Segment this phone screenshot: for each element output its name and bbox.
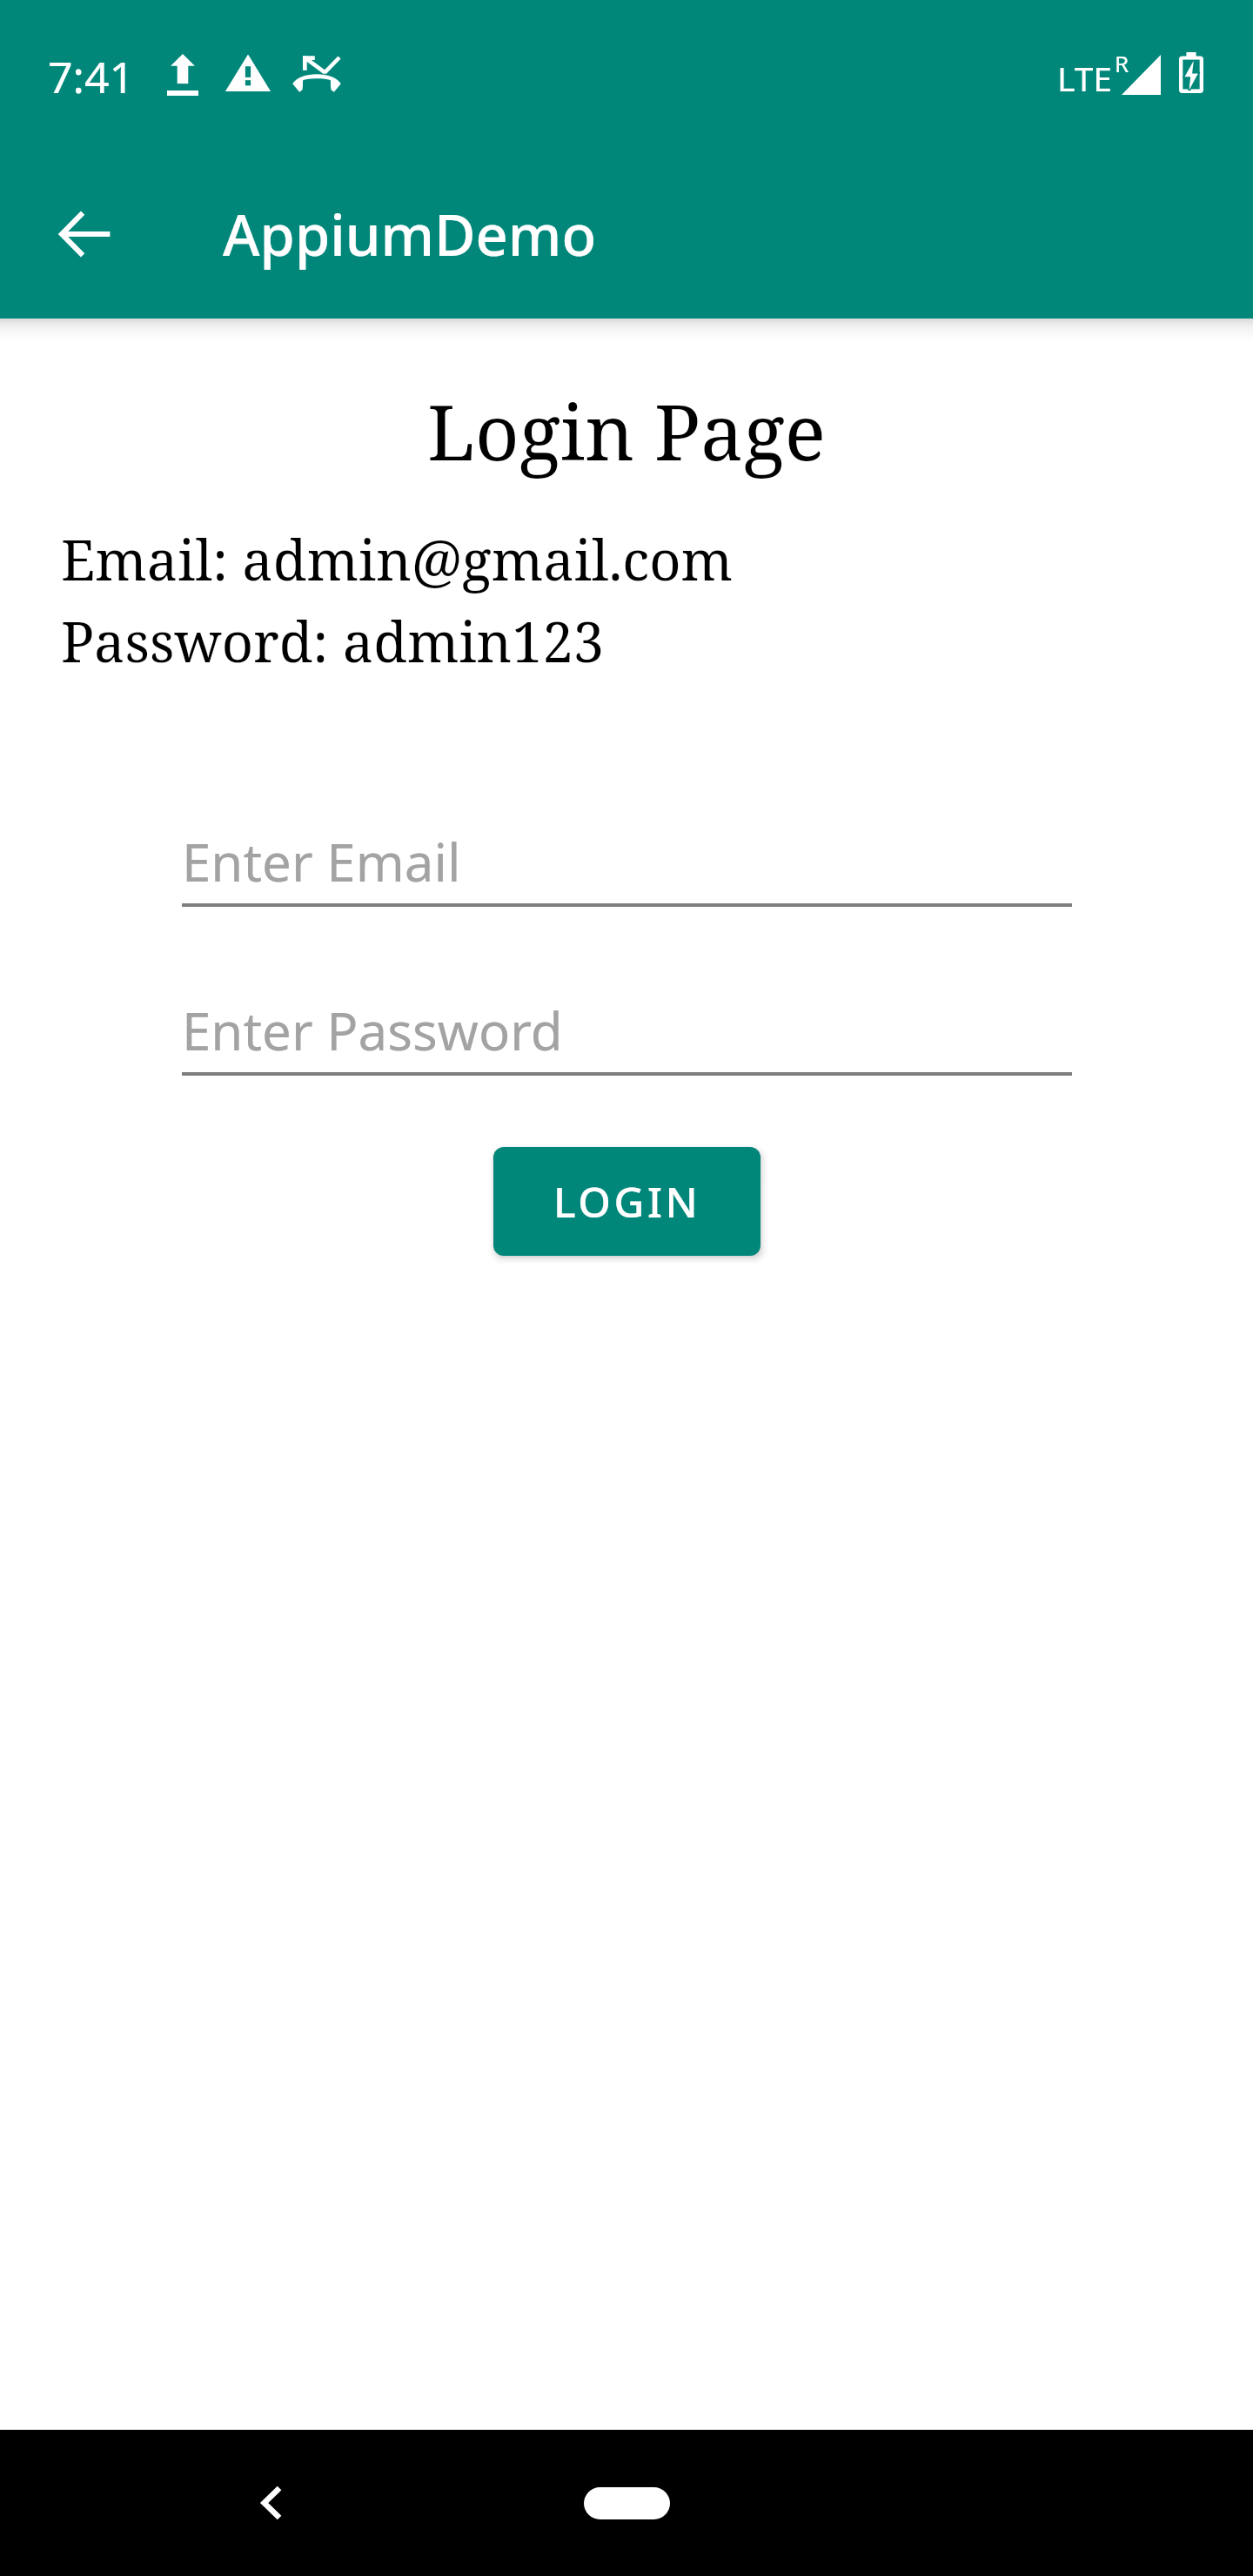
staticText: LTE xyxy=(1057,55,1113,101)
staticText: Email: admin@gmail.com xyxy=(61,522,734,597)
staticText: AppiumDemo xyxy=(223,196,597,273)
staticText: 7:41 xyxy=(48,47,135,106)
staticText: R xyxy=(1115,48,1129,78)
button[interactable]: Navigate up xyxy=(37,185,134,283)
button[interactable]: Back xyxy=(227,2459,314,2546)
staticText: LOGIN xyxy=(553,1173,701,1230)
staticText: Enter Password xyxy=(182,995,563,1066)
button[interactable]: Enter Email xyxy=(182,810,1072,910)
staticText: Login Page xyxy=(0,379,1253,483)
staticText: Password: admin123 xyxy=(61,604,604,679)
button[interactable]: Enter Password xyxy=(182,979,1072,1079)
staticText: Enter Email xyxy=(182,826,461,897)
button[interactable]: Home xyxy=(566,2470,687,2536)
button[interactable]: LOGIN xyxy=(493,1147,761,1256)
